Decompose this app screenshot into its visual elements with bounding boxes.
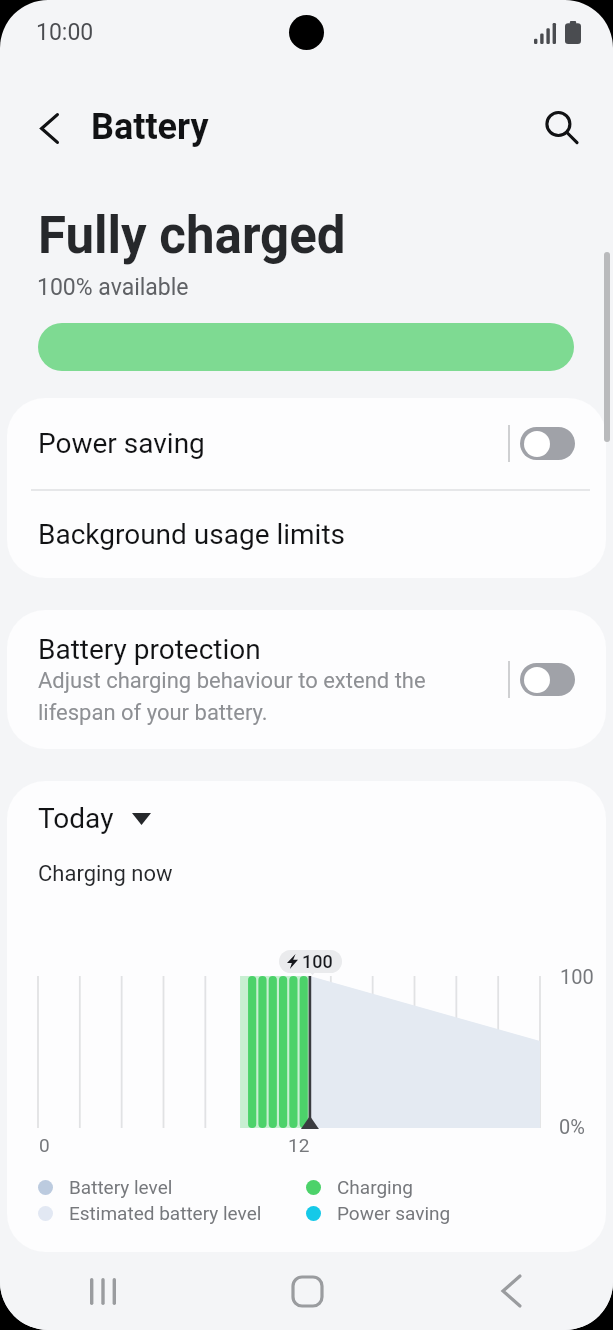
staticText: 100% available — [37, 274, 189, 301]
staticText: Fully charged — [38, 206, 346, 266]
staticText: Battery level — [69, 1176, 173, 1198]
staticText: Power saving — [38, 427, 508, 460]
staticText: 0% — [559, 1115, 585, 1138]
button[interactable]: Toggle — [520, 663, 575, 696]
staticText: Adjust charging behaviour to extend the … — [38, 668, 426, 726]
button[interactable]: Background usage limits — [7, 491, 606, 578]
button[interactable]: Back — [21, 100, 77, 156]
button[interactable]: Battery protection — [7, 610, 606, 749]
staticText: 100 — [302, 951, 333, 972]
staticText: Battery protection — [38, 633, 261, 666]
button[interactable]: Today — [38, 802, 151, 835]
staticText: 12 — [288, 1134, 310, 1156]
staticText: Estimated battery level — [69, 1202, 262, 1224]
button[interactable]: Toggle — [520, 427, 575, 460]
button[interactable]: Home — [205, 1252, 409, 1330]
staticText: Today — [38, 802, 114, 835]
staticText: 10:00 — [36, 19, 94, 46]
staticText: Power saving — [337, 1202, 451, 1224]
staticText: Charging now — [38, 861, 173, 887]
button[interactable]: Recents — [0, 1252, 205, 1330]
staticText: 100 — [560, 965, 594, 988]
staticText: Background usage limits — [38, 518, 346, 551]
staticText: Charging — [337, 1176, 413, 1198]
button[interactable]: Search — [534, 101, 590, 157]
button[interactable]: Back — [409, 1252, 613, 1330]
staticText: 0 — [39, 1134, 50, 1156]
button[interactable]: Power saving — [7, 398, 606, 489]
staticText: Battery — [91, 106, 209, 148]
